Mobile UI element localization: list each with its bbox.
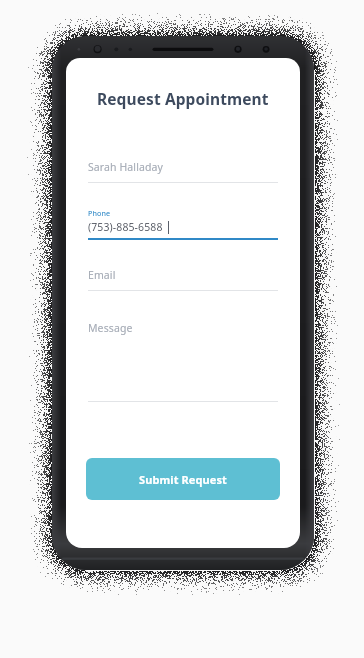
button[interactable]: Email	[66, 264, 300, 291]
staticText: Request Appointment	[97, 88, 269, 109]
button[interactable]: Sarah Halladay	[66, 156, 300, 183]
button[interactable]: Phone	[66, 208, 300, 240]
staticText: Message	[88, 321, 133, 335]
staticText: (753)-885-6588	[88, 220, 163, 234]
staticText: Sarah Halladay	[88, 160, 163, 174]
staticText: Submit Request	[139, 472, 227, 487]
button[interactable]: Message	[66, 317, 300, 402]
staticText: Email	[88, 268, 116, 282]
button[interactable]: Submit Request	[86, 458, 280, 500]
staticText: Phone	[88, 208, 111, 218]
